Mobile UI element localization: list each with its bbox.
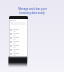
button[interactable] (10, 48, 26, 52)
button[interactable] (10, 52, 26, 56)
button[interactable] (10, 40, 26, 44)
button[interactable] (10, 44, 26, 48)
button[interactable] (10, 32, 26, 36)
staticText: browsing data easily (19, 11, 45, 15)
button[interactable] (10, 36, 26, 40)
staticText: Manage and clear your (18, 7, 47, 11)
button[interactable] (10, 28, 26, 32)
